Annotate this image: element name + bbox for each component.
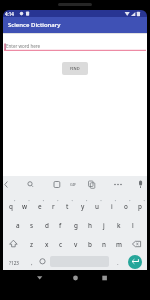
staticText: v: [74, 240, 78, 249]
button[interactable]: FIND: [62, 62, 88, 75]
button[interactable]: j: [97, 217, 110, 231]
button[interactable]: s: [25, 217, 38, 231]
staticText: y: [81, 202, 85, 211]
staticText: Enter word here: [6, 43, 41, 49]
staticText: b: [88, 240, 92, 249]
button[interactable]: t: [61, 198, 74, 212]
staticText: i: [111, 202, 113, 211]
button[interactable]: x: [40, 236, 53, 250]
button[interactable]: u: [90, 198, 103, 212]
button[interactable]: q: [4, 198, 17, 212]
staticText: a: [16, 221, 20, 230]
button[interactable]: f: [54, 217, 67, 231]
button[interactable]: e: [33, 198, 46, 212]
staticText: q: [9, 202, 13, 211]
button[interactable]: ?123: [4, 255, 23, 268]
staticText: e: [38, 202, 42, 211]
staticText: u: [95, 202, 99, 211]
button[interactable]: m: [112, 236, 125, 250]
button[interactable]: GIF: [70, 182, 77, 187]
button[interactable]: k: [112, 217, 125, 231]
button[interactable]: i: [105, 198, 118, 212]
staticText: x: [45, 240, 49, 249]
button[interactable]: w: [18, 198, 31, 212]
button[interactable]: [127, 236, 145, 250]
staticText: k: [117, 221, 121, 230]
button[interactable]: b: [83, 236, 96, 250]
button[interactable]: .: [111, 255, 124, 268]
staticText: o: [124, 202, 128, 211]
button[interactable]: n: [97, 236, 110, 250]
staticText: h: [88, 221, 92, 230]
button[interactable]: r: [47, 198, 60, 212]
button[interactable]: Science Dictionary: [3, 17, 147, 33]
button[interactable]: h: [83, 217, 96, 231]
staticText: Science Dictionary: [8, 21, 61, 29]
button[interactable]: [97, 270, 113, 290]
button[interactable]: p: [133, 198, 146, 212]
button[interactable]: c: [54, 236, 67, 250]
button[interactable]: [128, 255, 142, 269]
staticText: n: [102, 240, 106, 249]
staticText: ?123: [9, 260, 19, 266]
button[interactable]: [32, 270, 48, 290]
button[interactable]: y: [76, 198, 89, 212]
button[interactable]: [68, 270, 84, 290]
button[interactable]: z: [25, 236, 38, 250]
staticText: r: [52, 202, 55, 211]
staticText: j: [103, 221, 105, 230]
button[interactable]: g: [69, 217, 82, 231]
staticText: w: [22, 202, 28, 211]
staticText: f: [59, 221, 62, 230]
staticText: t: [66, 202, 69, 211]
staticText: d: [45, 221, 49, 230]
staticText: l: [132, 221, 134, 230]
button[interactable]: [4, 236, 23, 250]
staticText: m: [116, 240, 122, 249]
button[interactable]: o: [119, 198, 132, 212]
staticText: p: [138, 202, 142, 211]
staticText: s: [30, 221, 34, 230]
staticText: .: [117, 259, 119, 267]
button[interactable]: l: [126, 217, 139, 231]
staticText: g: [74, 221, 78, 230]
button[interactable]: d: [40, 217, 53, 231]
staticText: FIND: [70, 66, 80, 71]
staticText: z: [30, 240, 34, 249]
staticText: 4:14: [5, 11, 14, 17]
staticText: ,: [31, 259, 33, 267]
staticText: c: [59, 240, 63, 249]
staticText: GIF: [70, 182, 77, 187]
button[interactable]: Enter word here: [6, 43, 41, 49]
button[interactable]: ,: [25, 255, 38, 268]
button[interactable]: a: [11, 217, 24, 231]
button[interactable]: [39, 255, 52, 268]
button[interactable]: v: [69, 236, 82, 250]
